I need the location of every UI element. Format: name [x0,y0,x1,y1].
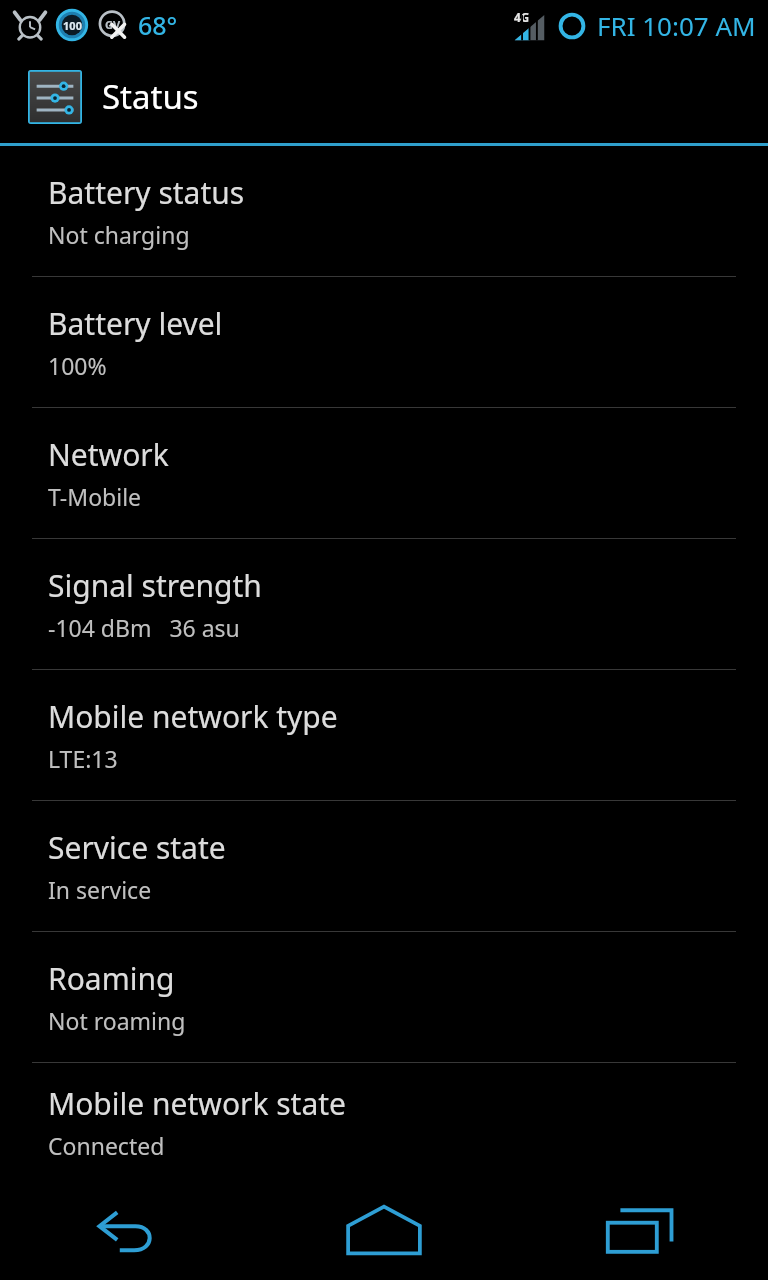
button[interactable]: Service state [0,801,768,931]
button[interactable]: Battery level [0,277,768,407]
staticText: Signal strength [48,565,262,606]
button[interactable]: Signal strength [0,539,768,669]
staticText: Not charging [48,219,190,250]
button[interactable]: Mobile network state [0,1063,768,1180]
staticText: Battery status [48,172,245,213]
button[interactable]: Roaming [0,932,768,1062]
staticText: Mobile network type [48,696,338,737]
staticText: Network [48,434,169,475]
button[interactable]: Status [0,50,768,143]
button[interactable]: Recent apps [512,1180,768,1280]
staticText: Connected [48,1130,165,1161]
staticText: T-Mobile [48,481,142,512]
button[interactable]: Network [0,408,768,538]
staticText: In service [48,874,152,905]
staticText: Not roaming [48,1005,186,1036]
staticText: GV [105,17,121,32]
button[interactable]: Back [0,1180,256,1280]
staticText: 100 [63,18,82,33]
button[interactable]: Home [256,1180,512,1280]
staticText: 68° [138,8,178,42]
staticText: 4G [514,9,530,25]
staticText: -104 dBm 36 asu [48,612,240,643]
staticText: FRI 10:07 AM [597,8,756,43]
staticText: 100% [48,350,107,381]
staticText: Roaming [48,958,175,999]
staticText: LTE:13 [48,743,118,774]
button[interactable]: Battery status [0,146,768,276]
staticText: Battery level [48,303,223,344]
staticText: Service state [48,827,226,868]
button[interactable]: Mobile network type [0,670,768,800]
staticText: Status [102,74,199,119]
staticText: Mobile network state [48,1083,347,1124]
